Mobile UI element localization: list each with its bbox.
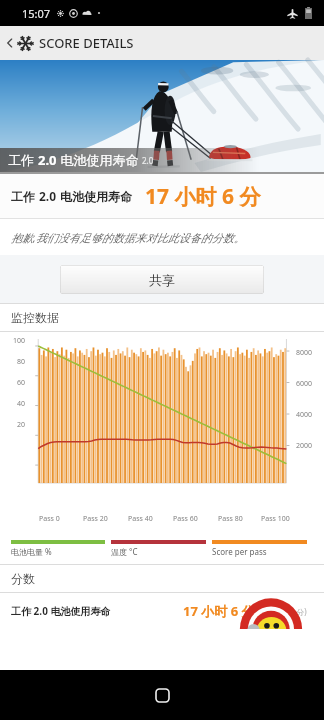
staticText: 8000 bbox=[296, 348, 313, 358]
staticText: 工作 bbox=[8, 151, 38, 169]
staticText: SCORE DETAILS bbox=[39, 34, 134, 52]
staticText: 17 小时 6 分 bbox=[183, 602, 255, 620]
staticText: 2000 bbox=[296, 441, 313, 451]
staticText: 20 bbox=[17, 420, 26, 430]
staticText: 分数 bbox=[11, 571, 35, 586]
staticText: 2.0 bbox=[38, 151, 57, 169]
staticText: 17 小时 6 分 bbox=[145, 182, 261, 211]
staticText: 工作 2.0 电池使用寿命 bbox=[11, 604, 111, 618]
staticText: 工作 bbox=[11, 188, 39, 204]
staticText: 2.0 bbox=[142, 155, 154, 166]
staticText: 电池电量 % bbox=[11, 546, 52, 557]
staticText: 监控数据 bbox=[11, 310, 59, 325]
other: Back bbox=[3, 36, 17, 50]
staticText: 80 bbox=[17, 357, 26, 367]
staticText: 6000 bbox=[296, 379, 313, 389]
staticText: Score per pass bbox=[212, 546, 267, 557]
staticText: Pass 80 bbox=[218, 514, 243, 524]
staticText: 15:07 bbox=[22, 6, 51, 21]
staticText: 温度 °C bbox=[111, 546, 138, 557]
button[interactable]: Home bbox=[147, 680, 177, 710]
staticText: 2.0 bbox=[39, 188, 57, 204]
staticText: Pass 40 bbox=[128, 514, 153, 524]
staticText: 4000 bbox=[296, 410, 313, 420]
staticText: 抱歉,我们没有足够的数据来对比此设备的分数。 bbox=[11, 230, 245, 245]
staticText: 电池使用寿命 bbox=[57, 151, 139, 169]
staticText: 40 bbox=[17, 399, 26, 409]
staticText: Pass 100 bbox=[261, 514, 290, 524]
staticText: Pass 60 bbox=[173, 514, 198, 524]
button[interactable]: 共享 bbox=[60, 265, 264, 294]
button[interactable]: Back bbox=[0, 26, 324, 60]
staticText: 共享 bbox=[149, 272, 175, 288]
button[interactable]: 工作 2.0 电池使用寿命 bbox=[11, 593, 313, 629]
staticText: Pass 0 bbox=[39, 514, 60, 524]
staticText: 电池使用寿命 bbox=[57, 188, 133, 204]
staticText: Pass 20 bbox=[83, 514, 108, 524]
staticText: 100 bbox=[13, 336, 26, 346]
staticText: (17 小时 6 分) bbox=[258, 606, 307, 617]
staticText: 60 bbox=[17, 378, 26, 388]
